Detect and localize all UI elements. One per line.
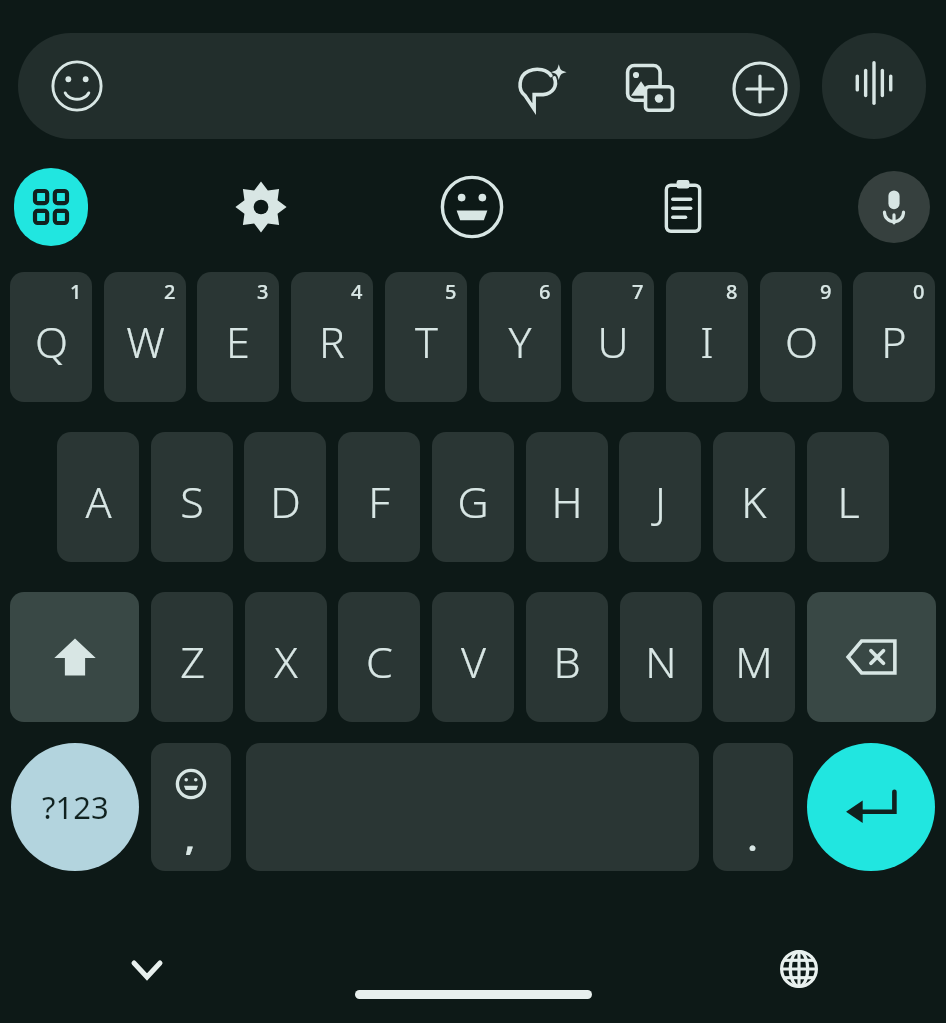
staticText: Q xyxy=(35,312,68,371)
button[interactable]: F xyxy=(338,432,420,562)
button[interactable]: V xyxy=(432,592,514,722)
button[interactable]: K xyxy=(713,432,795,562)
button[interactable]: H xyxy=(526,432,608,562)
staticText: 3 xyxy=(257,278,269,305)
button[interactable]: Add xyxy=(732,61,788,117)
staticText: S xyxy=(180,472,204,531)
button[interactable]: C xyxy=(338,592,420,722)
button[interactable]: P xyxy=(853,272,935,402)
button[interactable]: . xyxy=(713,743,793,871)
button[interactable]: Voice input xyxy=(858,171,930,243)
button[interactable]: B xyxy=(526,592,608,722)
button[interactable]: Y xyxy=(479,272,561,402)
button[interactable]: Emoji xyxy=(440,175,504,239)
button[interactable]: X xyxy=(245,592,327,722)
staticText: 9 xyxy=(820,278,832,305)
button[interactable]: Z xyxy=(151,592,233,722)
button[interactable]: G xyxy=(432,432,514,562)
staticText: 4 xyxy=(351,278,363,305)
staticText: K xyxy=(741,472,767,531)
button[interactable]: M xyxy=(713,592,795,722)
button[interactable]: U xyxy=(572,272,654,402)
staticText: H xyxy=(551,472,583,531)
staticText: N xyxy=(645,632,677,691)
button[interactable]: Shift xyxy=(10,592,139,722)
staticText: 1 xyxy=(70,278,82,305)
button[interactable]: N xyxy=(620,592,702,722)
staticText: W xyxy=(126,312,165,371)
staticText: A xyxy=(85,472,112,531)
button[interactable]: Backspace xyxy=(807,592,936,722)
button[interactable]: D xyxy=(244,432,326,562)
button[interactable]: W xyxy=(104,272,186,402)
staticText: R xyxy=(319,312,345,371)
staticText: X xyxy=(274,632,298,691)
staticText: P xyxy=(881,312,907,371)
button[interactable]: Voice waveform xyxy=(822,33,926,139)
staticText: ?123 xyxy=(42,786,109,828)
button[interactable]: O xyxy=(760,272,842,402)
button[interactable]: Emoji xyxy=(18,33,800,139)
button[interactable]: Q xyxy=(10,272,92,402)
staticText: M xyxy=(735,632,773,691)
button[interactable]: Emoji xyxy=(50,59,104,113)
button[interactable]: Clipboard xyxy=(651,175,715,239)
staticText: G xyxy=(457,472,489,531)
button[interactable]: L xyxy=(807,432,889,562)
button[interactable]: A xyxy=(57,432,139,562)
button[interactable]: Media xyxy=(622,61,678,117)
staticText: Y xyxy=(508,312,532,371)
button[interactable]: J xyxy=(619,432,701,562)
button[interactable]: Hide keyboard xyxy=(118,940,176,998)
staticText: O xyxy=(785,312,818,371)
button[interactable]: Emoji and comma xyxy=(151,743,231,871)
button[interactable]: Change language xyxy=(770,940,828,998)
staticText: 0 xyxy=(913,278,925,305)
staticText: D xyxy=(270,472,301,531)
staticText: 2 xyxy=(164,278,176,305)
staticText: U xyxy=(597,312,629,371)
staticText: F xyxy=(368,472,390,531)
button[interactable]: S xyxy=(151,432,233,562)
staticText: E xyxy=(226,312,250,371)
button[interactable]: Smart reply xyxy=(514,61,570,117)
staticText: J xyxy=(655,472,666,531)
staticText: V xyxy=(461,632,486,691)
staticText: 6 xyxy=(539,278,551,305)
staticText: , xyxy=(185,815,195,861)
staticText: Z xyxy=(180,632,205,691)
staticText: 7 xyxy=(632,278,644,305)
staticText: L xyxy=(837,472,860,531)
staticText: C xyxy=(366,632,393,691)
button[interactable]: Apps xyxy=(14,168,88,246)
button[interactable]: R xyxy=(291,272,373,402)
button[interactable]: Settings xyxy=(229,175,293,239)
staticText: B xyxy=(553,632,581,691)
button[interactable]: I xyxy=(666,272,748,402)
staticText: 8 xyxy=(726,278,738,305)
button[interactable]: Enter xyxy=(807,743,935,871)
button[interactable]: ?123 xyxy=(11,743,139,871)
staticText: . xyxy=(748,817,757,861)
staticText: I xyxy=(700,312,714,371)
button[interactable]: T xyxy=(385,272,467,402)
staticText: 5 xyxy=(445,278,457,305)
button[interactable]: E xyxy=(197,272,279,402)
staticText: T xyxy=(415,312,438,371)
